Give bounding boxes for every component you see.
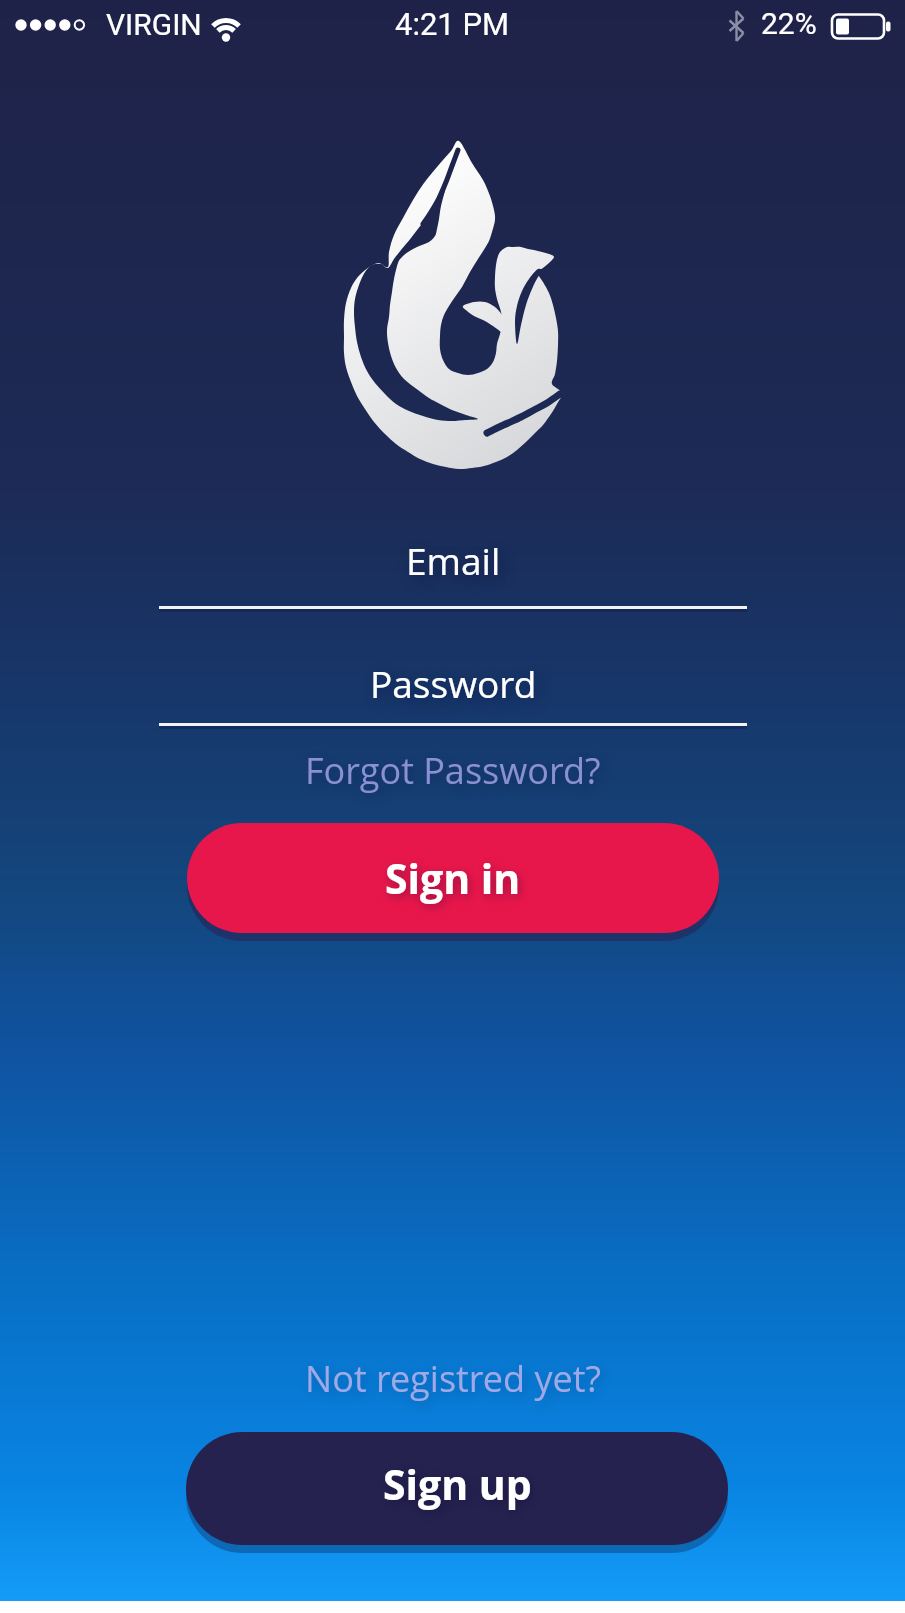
staticText: Sign in [385, 850, 521, 906]
button[interactable]: Sign up [186, 1432, 728, 1545]
button[interactable]: Password [159, 646, 747, 720]
staticText: VIRGIN [106, 7, 202, 42]
button[interactable]: Not registred yet? [293, 1350, 613, 1406]
staticText: Not registred yet? [305, 1354, 601, 1403]
button[interactable]: Email [159, 523, 747, 597]
staticText: Sign up [383, 1456, 532, 1512]
staticText: Password [370, 658, 537, 708]
staticText: Email [406, 535, 501, 585]
staticText: 4:21 PM [395, 6, 510, 42]
button[interactable]: Sign in [187, 823, 719, 933]
staticText: 22% [761, 6, 817, 41]
staticText: Forgot Password? [305, 746, 601, 795]
button[interactable]: Forgot Password? [303, 742, 603, 798]
